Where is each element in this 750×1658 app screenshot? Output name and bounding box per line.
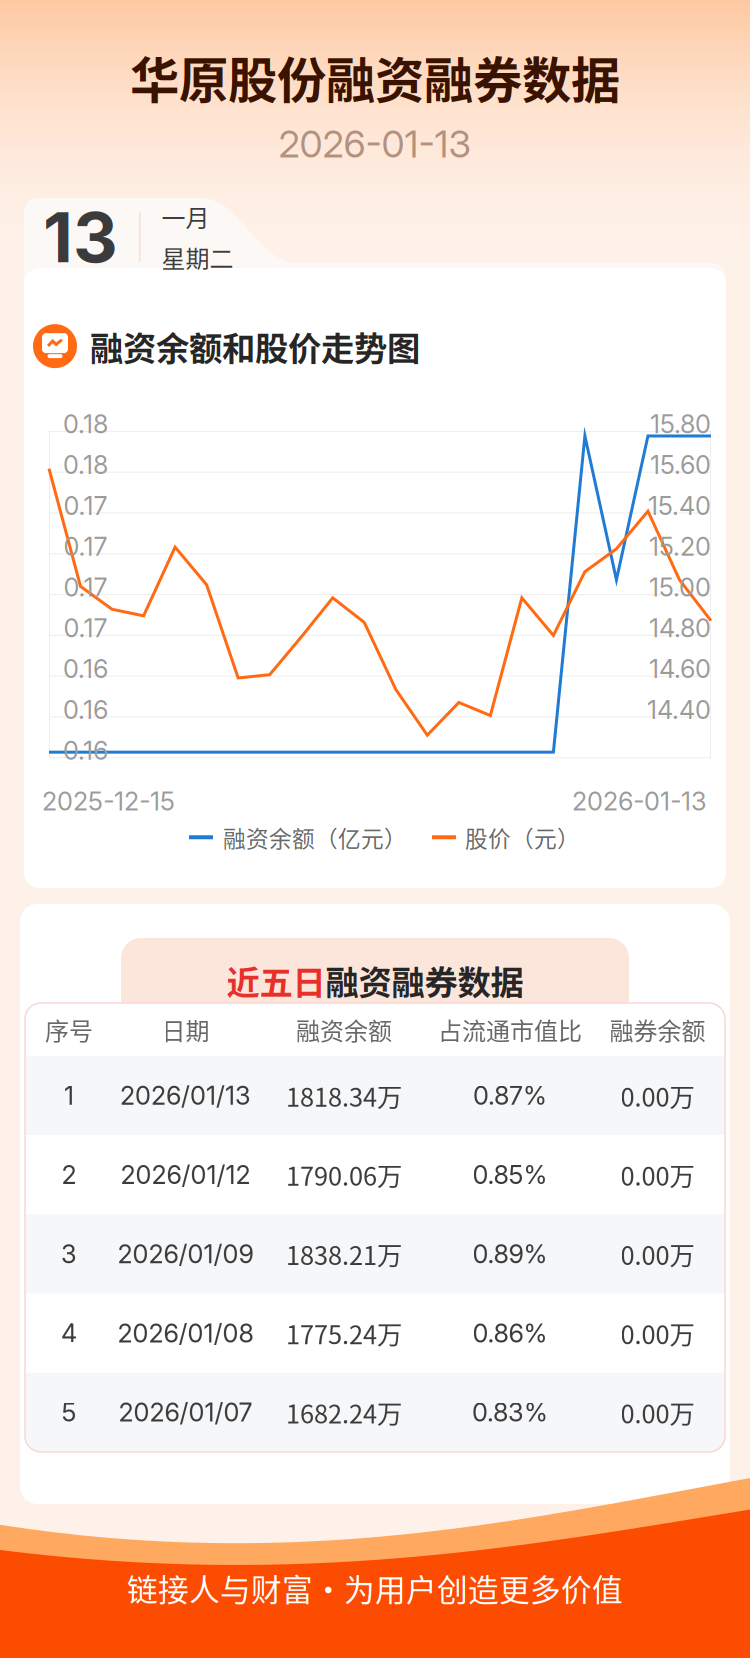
staticText: 14.40 (647, 694, 711, 725)
staticText: 0.16 (63, 735, 108, 766)
staticText: 链接人与财富·为用户创造更多价值 (127, 1566, 623, 1610)
staticText: 0.17 (63, 490, 107, 521)
staticText: 0.16 (63, 694, 108, 725)
staticText: 0.18 (63, 409, 108, 439)
staticText: 3 (61, 1239, 77, 1269)
staticText: 2026/01/13 (120, 1080, 251, 1111)
staticText: 序号 (45, 1012, 93, 1047)
staticText: 0.17 (63, 613, 107, 643)
staticText: 0.86% (472, 1318, 547, 1349)
staticText: 15.60 (650, 449, 711, 480)
staticText: 0.00万 (620, 1315, 694, 1352)
staticText: 日期 (161, 1012, 209, 1047)
staticText: 占流通市值比 (438, 1012, 582, 1047)
staticText: 15.20 (649, 531, 711, 562)
staticText: 近五日 (226, 956, 325, 1004)
staticText: 1818.34万 (286, 1077, 402, 1114)
staticText: 2026-01-13 (278, 121, 471, 167)
staticText: 2026-01-13 (572, 786, 707, 817)
staticText: 0.00万 (620, 1236, 694, 1272)
staticText: 14.80 (649, 613, 711, 643)
staticText: 14.60 (649, 653, 711, 684)
staticText: 0.83% (472, 1397, 548, 1428)
staticText: 融券余额 (609, 1012, 705, 1047)
staticText: 0.85% (472, 1159, 547, 1190)
staticText: 星期二 (161, 240, 233, 275)
staticText: 0.00万 (620, 1156, 694, 1193)
staticText: 2026/01/09 (117, 1239, 253, 1269)
staticText: 13 (43, 195, 118, 279)
staticText: 4 (61, 1318, 77, 1349)
staticText: 2 (61, 1159, 76, 1190)
staticText: 0.17 (63, 531, 107, 562)
staticText: 融资余额（亿元） (223, 821, 407, 854)
staticText: 0.00万 (620, 1394, 694, 1431)
staticText: 2025-12-15 (42, 786, 175, 817)
staticText: 华原股份融资融券数据 (130, 41, 620, 112)
staticText: 融资余额 (296, 1012, 392, 1047)
staticText: 1682.24万 (286, 1394, 402, 1431)
staticText: 1775.24万 (286, 1315, 402, 1352)
staticText: 0.89% (472, 1239, 547, 1269)
staticText: 1 (64, 1080, 74, 1111)
staticText: 2026/01/07 (118, 1397, 252, 1428)
staticText: 2026/01/08 (117, 1318, 253, 1349)
staticText: 0.87% (473, 1080, 547, 1111)
staticText: 2026/01/12 (120, 1159, 250, 1190)
staticText: 0.18 (63, 449, 108, 480)
staticText: 融资融券数据 (325, 956, 523, 1004)
staticText: 15.40 (648, 490, 711, 521)
staticText: 融资余额和股价走势图 (90, 322, 420, 370)
staticText: 0.16 (63, 653, 108, 684)
staticText: 股价（元） (465, 821, 580, 854)
staticText: 15.80 (650, 409, 711, 439)
staticText: 1838.21万 (286, 1236, 402, 1272)
staticText: 15.00 (649, 572, 711, 603)
staticText: 0.00万 (620, 1077, 694, 1114)
staticText: 一月 (161, 199, 209, 234)
staticText: 5 (61, 1397, 76, 1428)
staticText: 1790.06万 (286, 1156, 402, 1193)
staticText: 0.17 (63, 572, 107, 603)
